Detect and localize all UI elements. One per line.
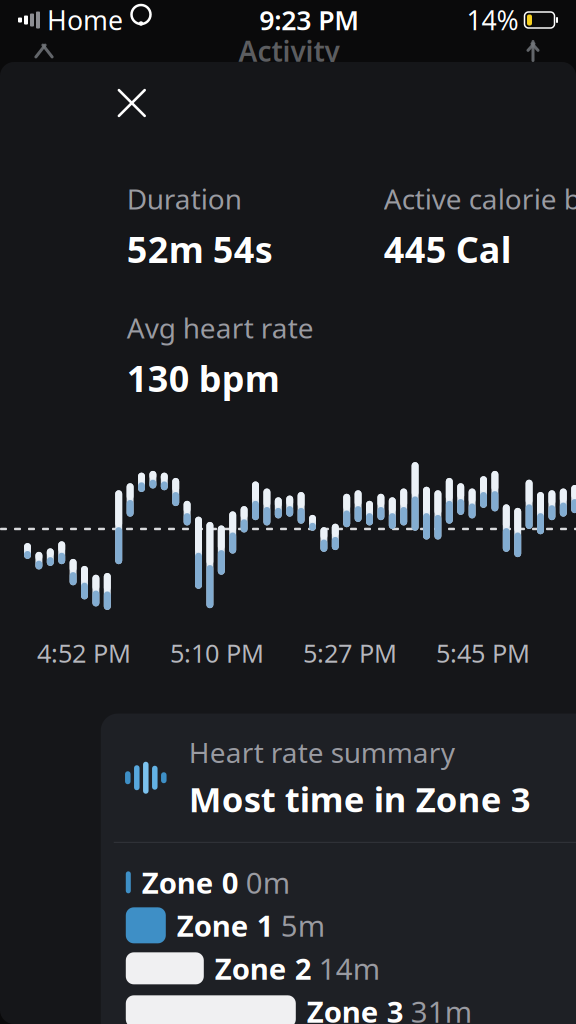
staticText: 31m [411, 992, 472, 1024]
staticText: 4:52 PM [37, 636, 131, 670]
staticText: Heart rate summary [189, 734, 455, 771]
staticText: 5:27 PM [303, 636, 397, 670]
staticText: Zone 2 [215, 949, 312, 988]
staticText: Most time in Zone 3 [189, 776, 531, 822]
staticText: Duration [127, 180, 242, 217]
staticText: Zone 3 [307, 992, 404, 1024]
staticText: Zone 0 [142, 863, 239, 902]
staticText: 14m [319, 949, 380, 988]
staticText: Activity [238, 32, 339, 70]
staticText: 5m [281, 906, 325, 945]
staticText: 0m [246, 863, 290, 902]
staticText: Zone 1 [177, 906, 274, 945]
button[interactable]: Close [105, 76, 159, 130]
staticText: 14% [466, 2, 518, 38]
staticText: Home [47, 2, 123, 38]
staticText: Active calorie burn [384, 180, 576, 217]
staticText: 52m 54s [127, 225, 273, 273]
staticText: Avg heart rate [127, 309, 314, 346]
staticText: 5:10 PM [170, 636, 264, 670]
button[interactable]: Collapse heart rate summary [101, 714, 576, 842]
staticText: 445 Cal [384, 225, 512, 273]
staticText: 130 bpm [127, 354, 280, 402]
staticText: 9:23 PM [259, 2, 359, 38]
staticText: 5:45 PM [436, 636, 530, 670]
